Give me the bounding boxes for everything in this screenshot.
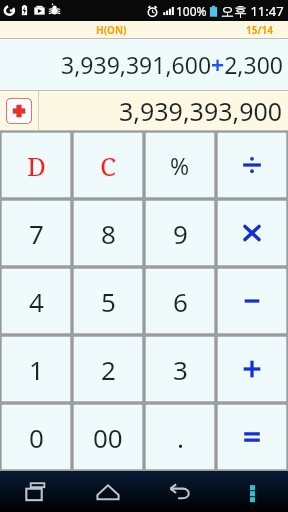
staticText: 3,939,391,600+2,300 [61, 49, 283, 80]
staticText: % [170, 150, 190, 181]
staticText: 8 [101, 216, 116, 251]
button[interactable]: Subtract [217, 268, 287, 334]
button[interactable]: C [73, 132, 143, 198]
button[interactable]: 2 [73, 336, 143, 402]
button[interactable]: Equals [217, 404, 287, 470]
staticText: 4 [29, 284, 44, 319]
staticText: D [27, 148, 46, 183]
staticText: 00 [93, 420, 123, 455]
button[interactable]: 5 [73, 268, 143, 334]
button[interactable]: 0 [1, 404, 71, 470]
button[interactable]: Add [217, 336, 287, 402]
staticText: 6 [173, 284, 188, 319]
button[interactable]: Divide [217, 132, 287, 198]
staticText: C [100, 148, 116, 183]
staticText: 7 [29, 216, 44, 251]
staticText: 5 [101, 284, 116, 319]
button[interactable]: 4 [1, 268, 71, 334]
staticText: 0 [29, 420, 44, 455]
button[interactable]: 3 [145, 336, 215, 402]
staticText: 9 [173, 216, 188, 251]
staticText: H(ON) [96, 23, 127, 37]
button[interactable]: 8 [73, 200, 143, 266]
button[interactable]: Back [144, 471, 216, 512]
button[interactable]: Multiply [217, 200, 287, 266]
button[interactable]: Recent apps [0, 471, 72, 512]
button[interactable]: . [145, 404, 215, 470]
button[interactable]: 9 [145, 200, 215, 266]
staticText: . [177, 420, 184, 455]
staticText: 2 [101, 352, 116, 387]
staticText: 100% [176, 3, 207, 19]
button[interactable]: 00 [73, 404, 143, 470]
button[interactable]: Memory plus [6, 98, 32, 124]
staticText: 3 [173, 352, 188, 387]
button[interactable]: 6 [145, 268, 215, 334]
staticText: 3,939,393,900 [119, 94, 283, 128]
button[interactable]: Home [72, 471, 144, 512]
staticText: 15/14 [246, 23, 274, 37]
staticText: 1 [29, 352, 44, 387]
button[interactable]: % [145, 132, 215, 198]
button[interactable]: 7 [1, 200, 71, 266]
button[interactable]: D [1, 132, 71, 198]
button[interactable]: More options [216, 471, 288, 512]
staticText: 오후 11:47 [221, 2, 284, 20]
button[interactable]: 1 [1, 336, 71, 402]
